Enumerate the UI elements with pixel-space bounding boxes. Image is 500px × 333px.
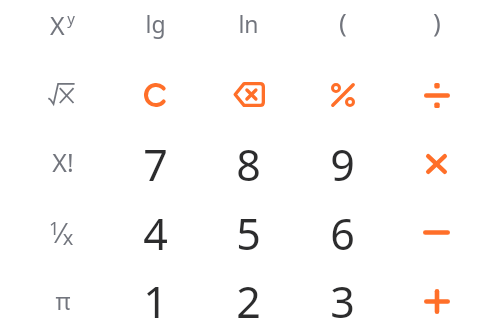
button[interactable]: ( (296, 0, 389, 58)
button[interactable]: Clear (109, 60, 202, 129)
button[interactable]: 2 (202, 267, 295, 333)
staticText: 1⁄x (49, 214, 74, 251)
button[interactable]: 8 (202, 130, 295, 199)
staticText: 2 (236, 272, 261, 331)
button[interactable]: Multiply (390, 130, 483, 199)
button[interactable]: ) (390, 0, 483, 58)
staticText: 6 (330, 204, 355, 263)
staticText: 3 (330, 272, 355, 331)
staticText: X! (52, 145, 74, 179)
button[interactable]: Square root (16, 60, 109, 129)
staticText: 9 (330, 135, 355, 194)
button[interactable]: 6 (296, 199, 389, 268)
staticText: 1 (143, 272, 168, 331)
staticText: 4 (143, 204, 168, 263)
button[interactable]: 5 (202, 199, 295, 268)
button[interactable]: Percent (296, 60, 389, 129)
staticText: 5 (236, 204, 261, 263)
staticText: X y (50, 8, 75, 43)
button[interactable]: Divide (390, 60, 483, 129)
button[interactable]: 1 (109, 267, 202, 333)
button[interactable]: Backspace (202, 60, 295, 129)
staticText: ln (238, 8, 259, 39)
staticText: π (55, 285, 71, 316)
button[interactable]: ln (202, 0, 295, 58)
staticText: 8 (236, 135, 261, 194)
button[interactable]: Reciprocal (16, 199, 109, 268)
button[interactable]: Plus (390, 267, 483, 333)
staticText: ( (339, 4, 347, 39)
button[interactable]: lg (109, 0, 202, 58)
button[interactable]: 4 (109, 199, 202, 268)
staticText: 7 (143, 135, 168, 194)
button[interactable]: x to the power y (16, 0, 109, 58)
button[interactable]: Pi (16, 267, 109, 333)
button[interactable]: Factorial (16, 130, 109, 199)
button[interactable]: Minus (390, 199, 483, 268)
button[interactable]: 3 (296, 267, 389, 333)
button[interactable]: 9 (296, 130, 389, 199)
staticText: lg (145, 8, 166, 39)
button[interactable]: 7 (109, 130, 202, 199)
staticText: ) (433, 4, 441, 39)
